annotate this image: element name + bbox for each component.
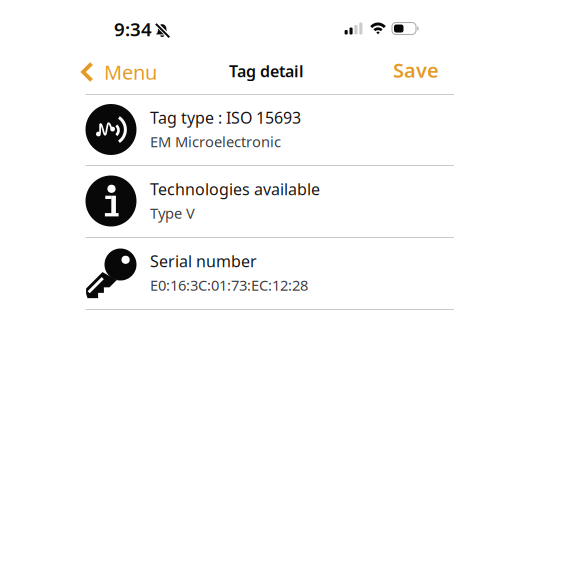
staticText: Tag type : ISO 15693: [150, 107, 301, 128]
staticText: Serial number: [150, 250, 257, 272]
staticText: Tag detail: [229, 60, 304, 82]
staticText: Menu: [104, 59, 157, 85]
staticText: Technologies available: [150, 178, 320, 200]
button[interactable]: Menu: [78, 53, 166, 91]
staticText: E0:16:3C:01:73:EC:12:28: [150, 275, 308, 295]
staticText: 9:34: [114, 17, 152, 41]
staticText: EM Microelectronic: [150, 132, 281, 151]
button[interactable]: Serial number: [85, 237, 454, 309]
staticText: Save: [393, 57, 439, 83]
button[interactable]: Tag type : ISO 15693: [85, 94, 454, 165]
button[interactable]: Technologies available: [85, 165, 454, 237]
button[interactable]: Save: [374, 51, 454, 89]
staticText: Type V: [150, 203, 195, 223]
